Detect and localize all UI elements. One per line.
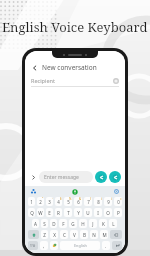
staticText: ·: [52, 197, 53, 201]
staticText: S: [43, 221, 46, 227]
button[interactable]: N: [90, 230, 98, 239]
button[interactable]: 0: [114, 197, 122, 206]
button[interactable]: O: [104, 208, 112, 217]
button[interactable]: Shift: [28, 230, 39, 239]
button[interactable]: 6: [74, 197, 82, 206]
button[interactable]: U: [84, 208, 92, 217]
staticText: New conversation: [42, 63, 97, 72]
button[interactable]: B: [80, 230, 88, 239]
staticText: .: [105, 243, 107, 249]
button[interactable]: Back: [30, 63, 39, 72]
staticText: Recipient: [31, 77, 55, 84]
button[interactable]: Y: [74, 208, 82, 217]
button[interactable]: Emoji: [50, 241, 58, 250]
staticText: C: [63, 232, 66, 238]
button[interactable]: English: [60, 241, 100, 250]
button[interactable]: I: [94, 208, 102, 217]
button[interactable]: Recipient: [31, 74, 119, 86]
staticText: H: [81, 221, 85, 227]
staticText: /: [90, 197, 92, 201]
button[interactable]: Clipboard: [30, 188, 37, 195]
button[interactable]: H: [79, 219, 87, 228]
button[interactable]: K: [99, 219, 107, 228]
staticText: ": [42, 197, 44, 201]
staticText: 1: [30, 199, 33, 205]
button[interactable]: C: [60, 230, 68, 239]
staticText: I: [97, 210, 99, 216]
staticText: G: [71, 221, 75, 227]
button[interactable]: E: [46, 208, 53, 217]
button[interactable]: X: [50, 230, 58, 239]
button[interactable]: P: [114, 208, 122, 217]
staticText: Enter message: [44, 174, 79, 181]
staticText: E: [48, 210, 51, 216]
staticText: D: [52, 221, 56, 227]
staticText: =: [120, 197, 122, 201]
button[interactable]: S: [41, 219, 48, 228]
button[interactable]: 8: [94, 197, 102, 206]
staticText: P: [117, 210, 120, 216]
button[interactable]: Enter: [112, 241, 122, 250]
staticText: N: [92, 232, 96, 238]
staticText: 2: [39, 199, 42, 205]
button[interactable]: 9: [104, 197, 112, 206]
staticText: A: [34, 221, 37, 227]
staticText: English: [74, 243, 87, 248]
staticText: M: [102, 232, 107, 238]
staticText: !?#: [30, 243, 36, 248]
staticText: 0: [117, 199, 120, 205]
button[interactable]: G: [69, 219, 77, 228]
staticText: $: [60, 197, 62, 201]
button[interactable]: Expand: [29, 173, 37, 181]
staticText: O: [106, 210, 110, 216]
button[interactable]: 1: [28, 197, 35, 206]
staticText: %: [69, 197, 72, 201]
button[interactable]: Z: [41, 230, 48, 239]
button[interactable]: Q: [28, 208, 35, 217]
staticText: 5: [67, 199, 70, 205]
staticText: V: [73, 232, 76, 238]
staticText: (: [101, 197, 102, 201]
staticText: 9: [107, 199, 110, 205]
button[interactable]: L: [109, 219, 117, 228]
staticText: Y: [77, 210, 80, 216]
button[interactable]: M: [100, 230, 108, 239]
staticText: K: [102, 221, 105, 227]
button[interactable]: Backspace: [110, 230, 122, 239]
staticText: L: [112, 221, 115, 227]
staticText: R: [57, 210, 60, 216]
button[interactable]: Enter message: [39, 171, 93, 183]
button[interactable]: 2: [37, 197, 44, 206]
button[interactable]: D: [50, 219, 57, 228]
button[interactable]: 4: [55, 197, 62, 206]
button[interactable]: !?#: [28, 241, 38, 250]
button[interactable]: Comma: [40, 241, 48, 250]
staticText: W: [38, 210, 43, 216]
staticText: &: [79, 197, 82, 201]
button[interactable]: Add recipient: [112, 77, 119, 84]
button[interactable]: V: [70, 230, 78, 239]
button[interactable]: 5: [64, 197, 72, 206]
staticText: Q: [30, 210, 34, 216]
staticText: F: [62, 221, 65, 227]
button[interactable]: Back: [25, 60, 125, 74]
button[interactable]: 3: [46, 197, 53, 206]
button[interactable]: Voice input: [71, 188, 79, 196]
button[interactable]: W: [37, 208, 44, 217]
button[interactable]: Keyboard settings: [113, 188, 120, 195]
button[interactable]: F: [59, 219, 67, 228]
staticText: 3: [48, 199, 51, 205]
button[interactable]: 7: [84, 197, 92, 206]
staticText: J: [92, 221, 94, 227]
button[interactable]: Voice message: [95, 171, 107, 183]
staticText: English Voice Keyboard: [2, 18, 148, 36]
staticText: B: [83, 232, 86, 238]
staticText: 4: [57, 199, 60, 205]
button[interactable]: R: [55, 208, 62, 217]
button[interactable]: Send: [109, 171, 121, 183]
staticText: ): [111, 197, 112, 201]
button[interactable]: Period: [102, 241, 110, 250]
button[interactable]: T: [64, 208, 72, 217]
button[interactable]: A: [32, 219, 39, 228]
button[interactable]: J: [89, 219, 97, 228]
